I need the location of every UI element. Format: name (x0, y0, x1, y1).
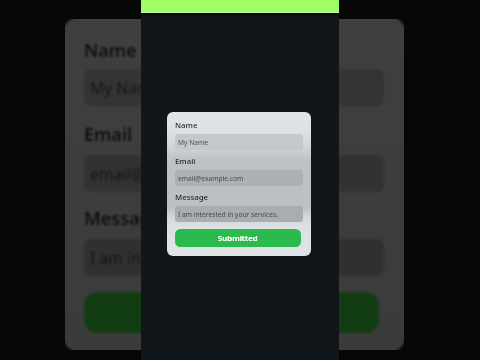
button[interactable]: Submitted (175, 229, 301, 247)
staticText: My Name (90, 77, 161, 98)
staticText: email@example.com (178, 174, 244, 183)
staticText: Name (84, 38, 137, 63)
staticText: My Name (178, 138, 209, 147)
staticText: I am interested in your services. (178, 210, 278, 219)
staticText: Email (84, 122, 133, 147)
button[interactable]: email@example.com (175, 170, 303, 186)
staticText: Submitted (218, 233, 258, 244)
button[interactable]: I am interested in your services. (175, 206, 303, 222)
staticText: email@example.com (90, 163, 244, 184)
staticText: Message (84, 206, 162, 231)
staticText: Email (175, 156, 196, 166)
button[interactable]: email@example.com (84, 155, 384, 192)
other: Status bar (141, 0, 339, 16)
staticText: I am interested in your services. (90, 247, 325, 268)
button[interactable]: My Name (84, 69, 384, 106)
staticText: Name (175, 120, 198, 130)
button[interactable]: My Name (175, 134, 303, 150)
staticText: Message (175, 192, 209, 202)
button[interactable]: I am interested in your services. (84, 239, 384, 276)
button[interactable]: Submitted (84, 292, 379, 333)
